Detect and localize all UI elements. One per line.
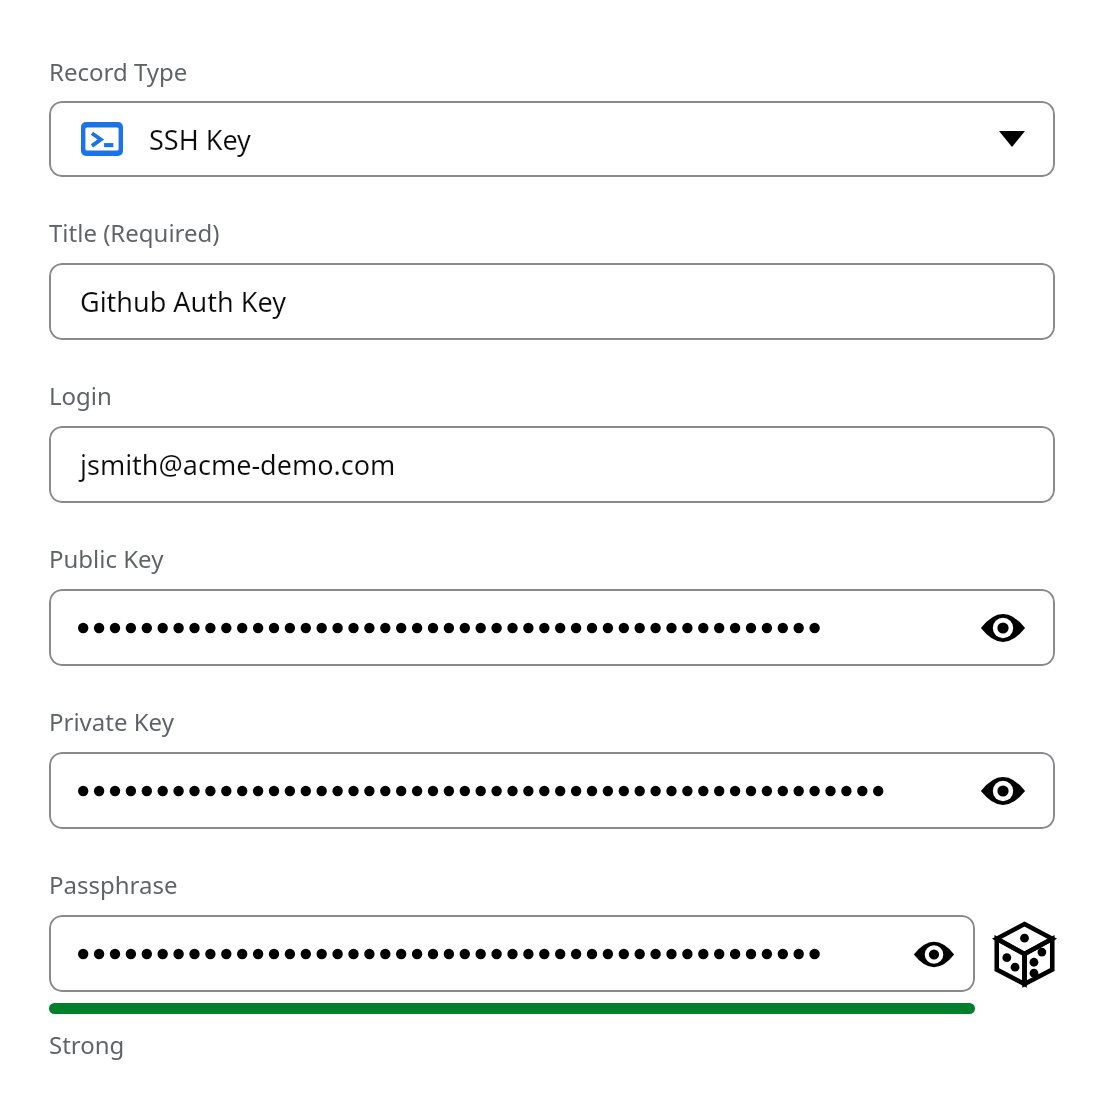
button[interactable]: Generate passphrase xyxy=(994,921,1055,987)
staticText: Title (Required) xyxy=(49,216,220,249)
button[interactable]: Show private key xyxy=(49,752,1055,829)
button[interactable]: Show private key xyxy=(973,761,1033,821)
button[interactable]: Show public key xyxy=(49,589,1055,666)
button[interactable]: SSH Key xyxy=(49,101,1055,177)
staticText: Public Key xyxy=(49,542,164,575)
staticText: Github Auth Key xyxy=(80,283,286,320)
staticText: Record Type xyxy=(49,55,188,88)
button[interactable]: Show public key xyxy=(973,598,1033,658)
button[interactable]: Show passphrase xyxy=(905,925,963,983)
button[interactable]: Show passphrase xyxy=(49,915,975,992)
staticText: SSH Key xyxy=(149,121,251,158)
staticText: Private Key xyxy=(49,705,174,738)
button[interactable]: Github Auth Key xyxy=(49,263,1055,340)
staticText: Passphrase xyxy=(49,868,178,901)
button[interactable]: Open record type menu xyxy=(989,116,1035,162)
staticText: jsmith@acme-demo.com xyxy=(80,446,396,483)
button[interactable]: jsmith@acme-demo.com xyxy=(49,426,1055,503)
staticText: Login xyxy=(49,379,112,412)
staticText: Strong xyxy=(49,1028,125,1061)
